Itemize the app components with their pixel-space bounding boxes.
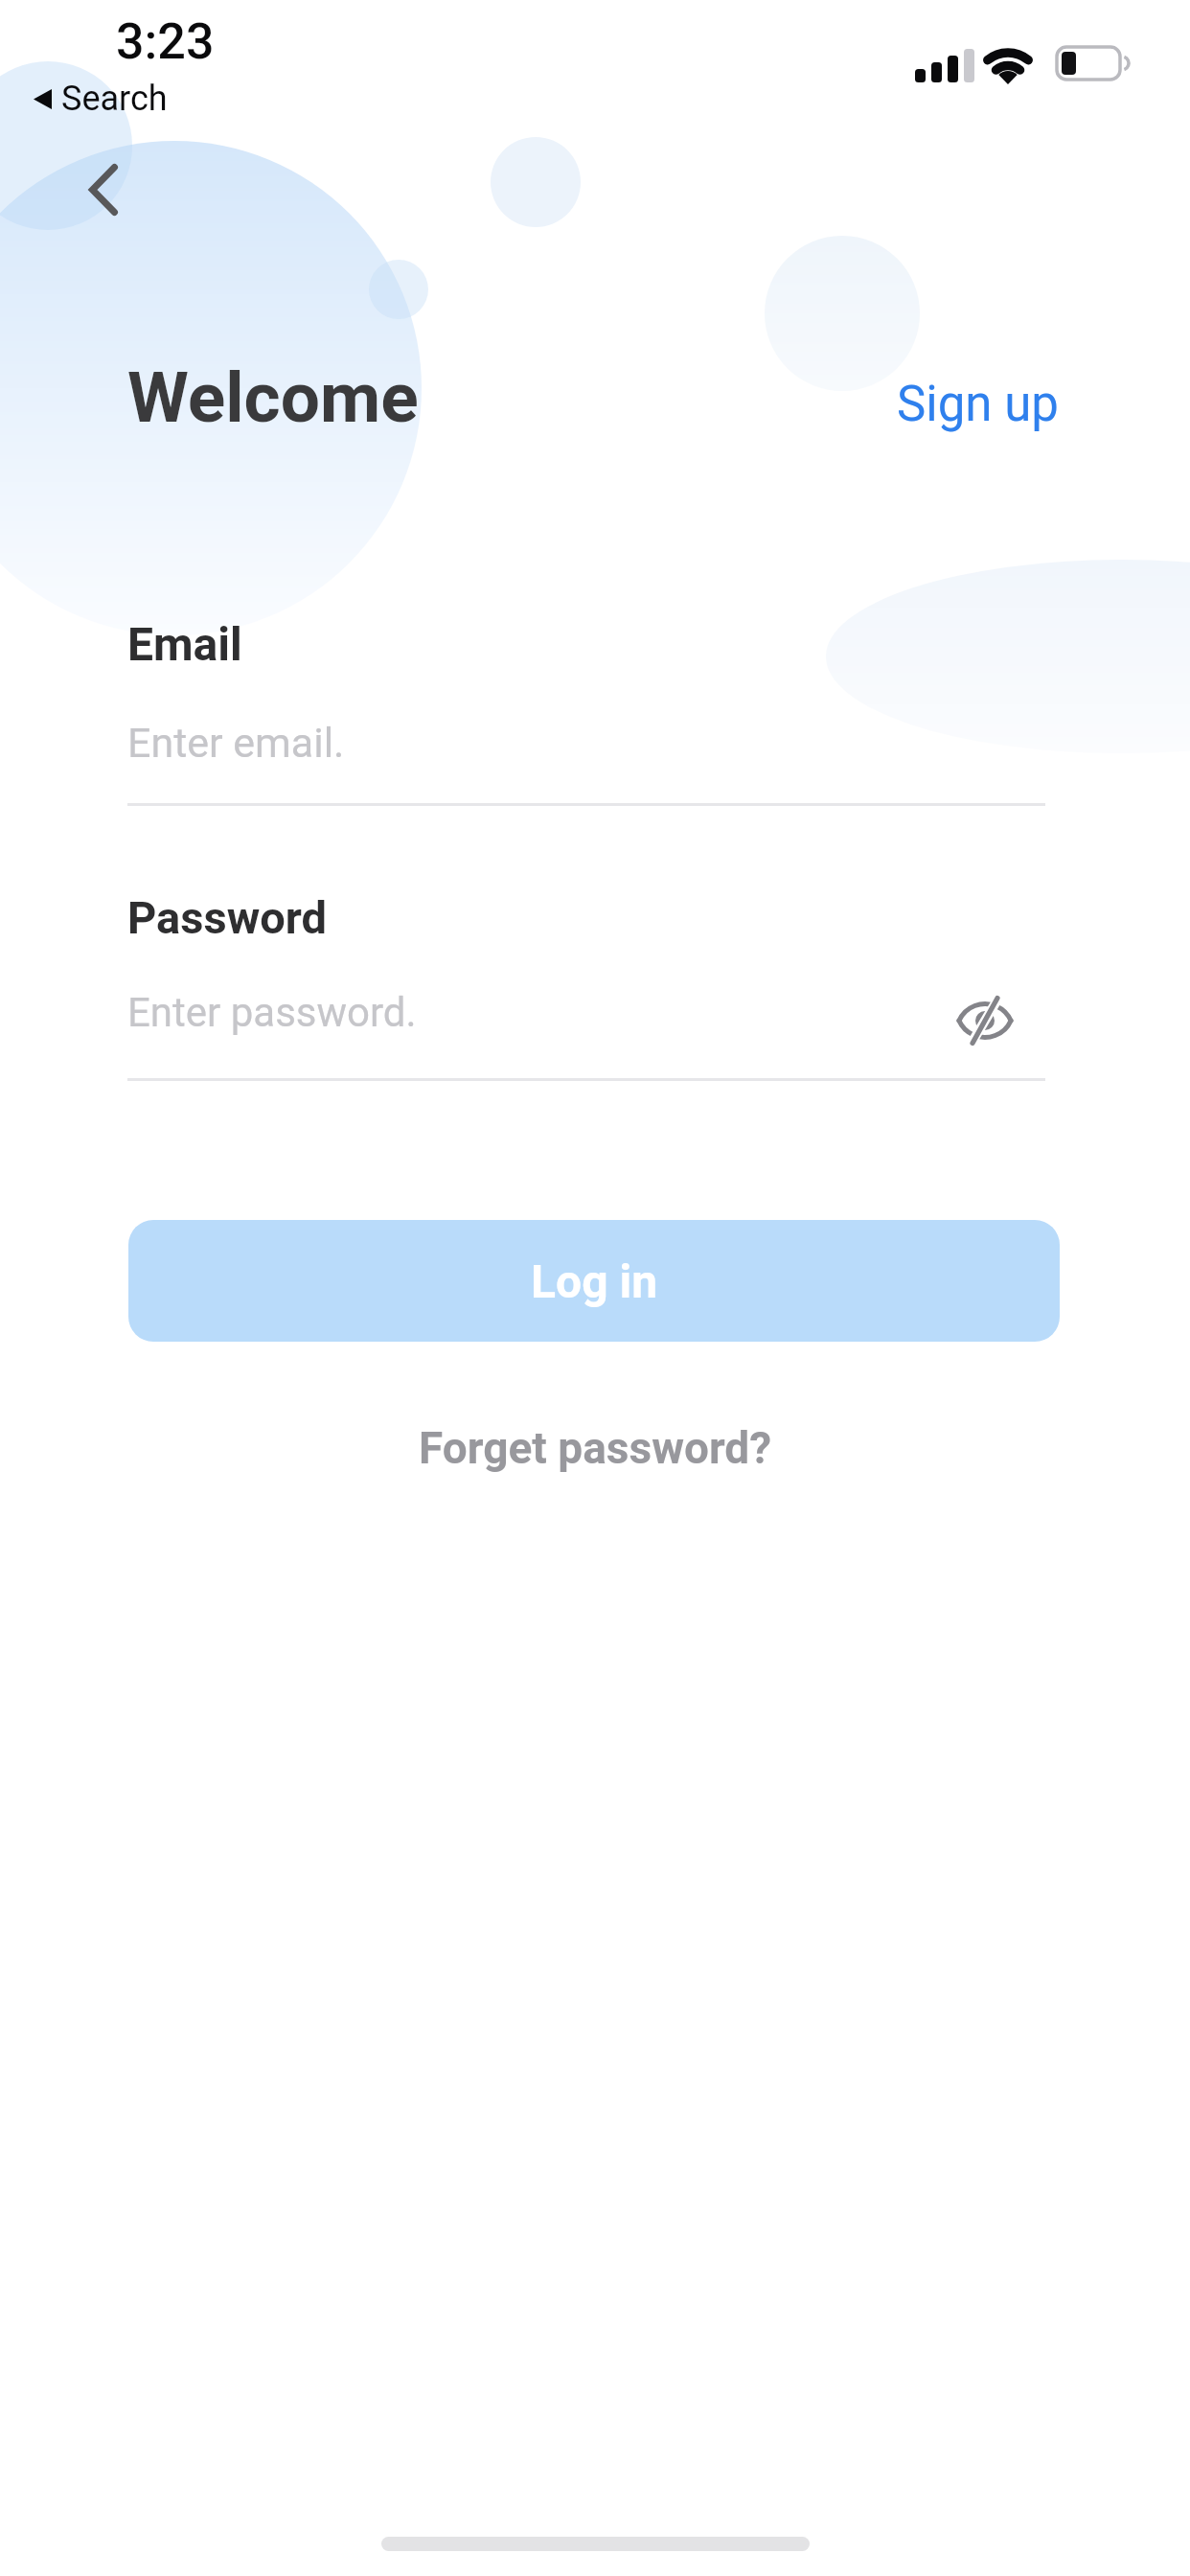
button[interactable] [944, 982, 1026, 1059]
button[interactable]: Sign up [897, 376, 1059, 433]
staticText: Search [61, 79, 168, 119]
staticText: Enter email. [127, 719, 345, 767]
button[interactable] [73, 159, 134, 220]
button[interactable]: Log in [128, 1220, 1060, 1342]
staticText: Welcome [127, 356, 419, 439]
staticText: Password [127, 891, 328, 944]
staticText: Enter password. [127, 989, 417, 1036]
button[interactable]: Forget password? [419, 1422, 772, 1474]
staticText: Email [127, 617, 242, 671]
staticText: 3:23 [116, 12, 215, 71]
staticText: Log in [531, 1254, 658, 1308]
